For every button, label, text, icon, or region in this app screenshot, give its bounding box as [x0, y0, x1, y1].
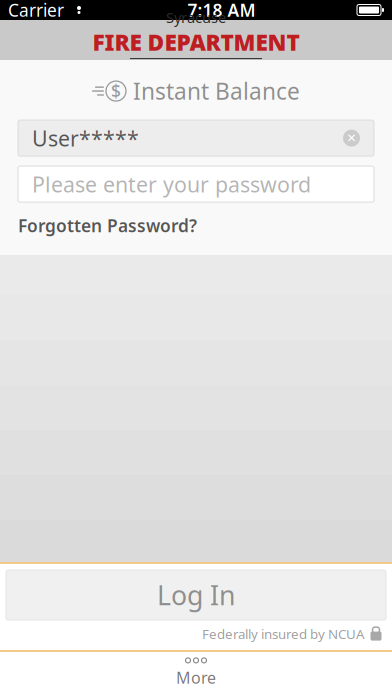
staticText: User***** — [32, 124, 139, 152]
staticText: $ — [111, 79, 121, 102]
staticText: Forgotten Password? — [18, 214, 197, 237]
button[interactable]: $ — [92, 76, 300, 106]
staticText: Please enter your password — [32, 170, 311, 198]
staticText: Instant Balance — [133, 76, 300, 106]
staticText: ✕ — [346, 131, 356, 145]
staticText — [64, 0, 72, 20]
button[interactable]: Log In — [6, 570, 386, 620]
button[interactable]: Clear username — [343, 130, 360, 147]
staticText: More — [176, 667, 216, 688]
staticText: Carrier — [8, 0, 64, 21]
button[interactable]: More — [0, 652, 392, 694]
staticText: 7:18 AM — [187, 0, 255, 21]
staticText: Federally insured by NCUA — [202, 625, 365, 643]
button[interactable]: Forgotten Password? — [18, 208, 197, 243]
staticText: FIRE DEPARTMENT — [92, 27, 299, 57]
staticText: Log In — [157, 577, 235, 613]
staticText: Syracuse — [166, 7, 226, 27]
